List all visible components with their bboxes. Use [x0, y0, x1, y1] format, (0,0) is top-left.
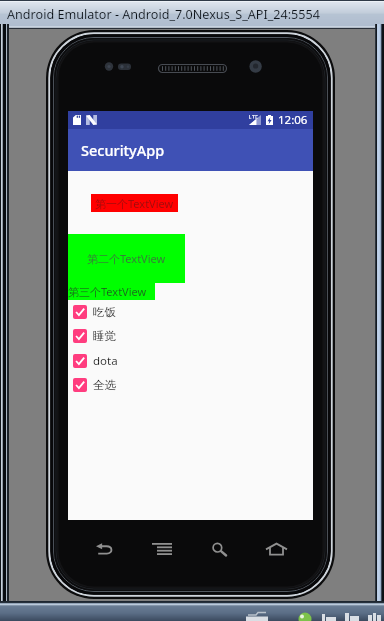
button[interactable]: 睡觉 [68, 324, 313, 348]
staticText: 睡觉 [93, 329, 116, 343]
staticText: 全选 [93, 378, 116, 392]
button[interactable]: 吃饭 [68, 300, 313, 324]
button[interactable]: 第一个TextView [91, 194, 178, 212]
staticText: SecurityApp [81, 140, 165, 160]
button[interactable]: Search [191, 521, 248, 577]
staticText: dota [93, 353, 118, 369]
staticText: 第二个TextView [87, 251, 166, 266]
button[interactable]: Home [248, 521, 305, 577]
button[interactable]: Back [76, 521, 133, 577]
button[interactable]: 全选 [68, 373, 313, 397]
staticText: 第一个TextView [95, 196, 174, 211]
staticText: Android Emulator - Android_7.0Nexus_S_AP… [7, 6, 320, 23]
button[interactable]: 第二个TextView [68, 234, 185, 283]
button[interactable]: Menu [133, 521, 190, 577]
button[interactable]: dota [68, 349, 313, 373]
button[interactable]: 第三个TextView [68, 283, 155, 300]
staticText: 吃饭 [93, 305, 116, 319]
staticText: 第三个TextView [68, 284, 147, 299]
staticText: 12:06 [278, 112, 308, 128]
